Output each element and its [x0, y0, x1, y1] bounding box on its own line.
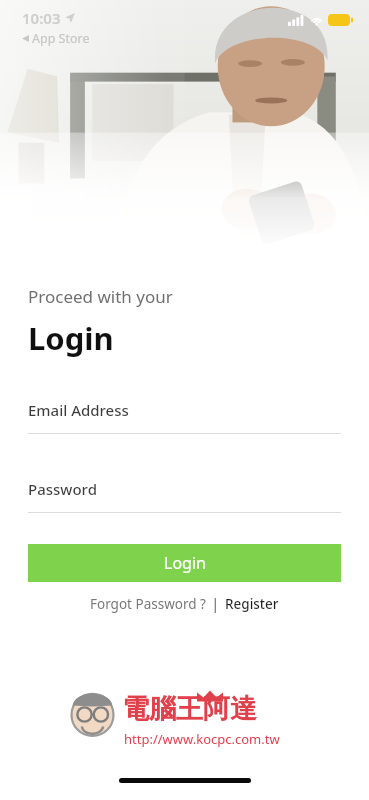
staticText: http://www.kocpc.com.tw	[124, 730, 280, 748]
staticText: Password	[28, 479, 97, 499]
staticText: 電腦王阿達	[122, 692, 257, 726]
button[interactable]: Forgot Password ?	[88, 593, 208, 615]
button[interactable]: Register	[223, 593, 281, 615]
staticText: App Store	[32, 30, 90, 47]
button[interactable]: Login	[28, 544, 341, 582]
staticText: Register	[225, 595, 279, 613]
staticText: Login	[164, 552, 206, 574]
staticText: Email Address	[28, 400, 129, 420]
staticText: 10:03	[22, 8, 61, 28]
staticText: Forgot Password ?	[90, 595, 206, 613]
button[interactable]: Back to App Store	[22, 30, 90, 47]
button[interactable]: Password	[0, 479, 369, 513]
staticText: Login	[28, 317, 114, 359]
button[interactable]: Email Address	[0, 400, 369, 434]
staticText: Proceed with your	[28, 285, 173, 308]
staticText: |	[208, 595, 223, 613]
